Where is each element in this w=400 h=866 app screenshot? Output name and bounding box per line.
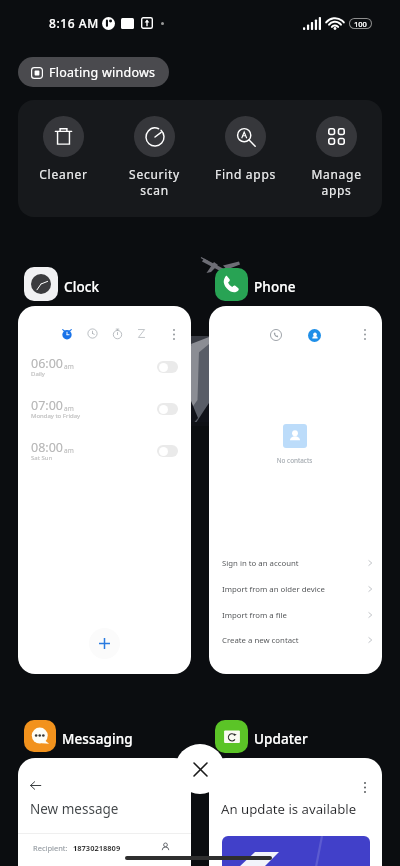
staticText: 06:00 [31, 355, 63, 372]
button[interactable]: Manage apps [291, 100, 382, 198]
staticText: 07:00 [31, 397, 63, 414]
staticText: Manage apps [291, 166, 382, 198]
button[interactable]: An update is available [209, 758, 382, 866]
staticText: Sign in to an account [222, 558, 299, 569]
button[interactable]: No contacts [209, 306, 382, 674]
staticText: Clock [64, 278, 100, 296]
button[interactable]: Floating windows [18, 57, 169, 87]
staticText: 100 [354, 19, 367, 28]
staticText: Sat Sun [31, 454, 53, 462]
staticText: New message [30, 800, 119, 818]
staticText: am [64, 362, 74, 371]
staticText: am [64, 404, 74, 413]
staticText: am [64, 446, 74, 455]
staticText: Updater [254, 730, 308, 748]
staticText: Import from a file [222, 610, 287, 621]
button[interactable]: Create a new contact [209, 628, 382, 650]
staticText: Daily [31, 370, 45, 378]
button[interactable]: Import from an older device [209, 577, 382, 599]
staticText: Messaging [62, 730, 133, 748]
button[interactable]: Updater [209, 719, 308, 753]
staticText: 08:00 [31, 439, 63, 456]
button[interactable]: Phone [209, 267, 296, 301]
button[interactable]: Clock [18, 267, 100, 301]
button[interactable]: Messaging [18, 719, 133, 753]
button[interactable]: Cleaner [18, 100, 109, 182]
button[interactable]: 06:00 [18, 306, 191, 674]
staticText: Recipient: [33, 843, 68, 853]
button[interactable]: New message [18, 758, 191, 866]
staticText: Floating windows [49, 64, 156, 81]
staticText: Create a new contact [222, 635, 299, 646]
button[interactable]: Sign in to an account [209, 551, 382, 573]
staticText: 8:16 AM [49, 15, 99, 31]
staticText: No contacts [209, 456, 381, 465]
staticText: Find apps [200, 166, 291, 182]
staticText: Cleaner [18, 166, 109, 182]
staticText: Security scan [109, 166, 200, 198]
button[interactable]: Close all apps [175, 744, 225, 794]
staticText: Phone [254, 278, 296, 296]
button[interactable]: Find apps [200, 100, 291, 182]
staticText: Import from an older device [222, 584, 325, 595]
button[interactable]: Import from a file [209, 603, 382, 625]
staticText: 18730218809 [73, 843, 121, 853]
staticText: Monday to Friday [31, 412, 81, 420]
button[interactable]: Security scan [109, 100, 200, 198]
staticText: An update is available [221, 800, 357, 818]
